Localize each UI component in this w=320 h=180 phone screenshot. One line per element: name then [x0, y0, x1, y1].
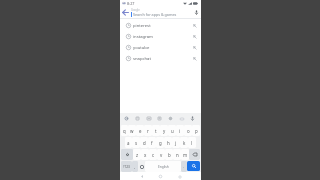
staticText: y [163, 128, 166, 134]
button[interactable]: Voice input [189, 115, 196, 122]
button[interactable]: u [168, 125, 176, 136]
button[interactable]: t [152, 125, 160, 136]
button[interactable]: b [165, 149, 173, 160]
staticText: f [151, 140, 153, 146]
staticText: h [167, 140, 170, 146]
button[interactable]: Theme [178, 115, 185, 122]
button[interactable]: i [176, 125, 184, 136]
button[interactable]: Shift [121, 149, 133, 160]
staticText: j [175, 140, 177, 146]
button[interactable]: k [180, 137, 188, 148]
staticText: r [147, 128, 149, 134]
button[interactable]: y [160, 125, 168, 136]
button[interactable]: r [144, 125, 152, 136]
staticText: youtube [133, 45, 150, 51]
staticText: ?123 [123, 165, 130, 169]
staticText: c [152, 152, 155, 158]
staticText: l [191, 140, 193, 146]
staticText: q [123, 128, 126, 134]
button[interactable]: h [164, 137, 172, 148]
button[interactable]: Voice search [191, 6, 201, 18]
button[interactable]: m [181, 149, 189, 160]
staticText: a [127, 140, 130, 146]
staticText: p [195, 128, 198, 134]
button[interactable]: Period [181, 161, 187, 172]
staticText: Google [131, 8, 140, 12]
button[interactable]: w [128, 125, 136, 136]
staticText: o [187, 128, 190, 134]
staticText: e [139, 128, 142, 134]
button[interactable]: Symbols [121, 161, 132, 172]
button[interactable]: a [125, 137, 132, 148]
button[interactable]: snapchat [120, 53, 201, 64]
button[interactable]: Backspace [189, 149, 200, 160]
button[interactable]: v [157, 149, 165, 160]
staticText: k [183, 140, 186, 146]
button[interactable]: Google search [123, 115, 130, 122]
button[interactable]: x [141, 149, 149, 160]
button[interactable]: f [148, 137, 156, 148]
button[interactable]: q [121, 125, 128, 136]
button[interactable]: z [133, 149, 141, 160]
button[interactable]: Emoji [138, 161, 145, 172]
button[interactable]: Back [138, 173, 145, 180]
button[interactable]: pinterest [120, 20, 201, 31]
staticText: b [168, 152, 171, 158]
button[interactable]: Home [157, 173, 164, 180]
staticText: u [171, 128, 174, 134]
button[interactable]: e [136, 125, 144, 136]
staticText: t [155, 128, 157, 134]
staticText: z [136, 152, 139, 158]
staticText: , [134, 164, 136, 169]
staticText: m [183, 152, 188, 158]
button[interactable]: j [172, 137, 180, 148]
staticText: pinterest [133, 23, 151, 29]
button[interactable]: Space [145, 161, 181, 172]
button[interactable]: l [188, 137, 196, 148]
button[interactable]: g [156, 137, 164, 148]
button[interactable]: Clipboard [156, 115, 163, 122]
button[interactable]: Back [120, 6, 131, 18]
button[interactable]: Comma [132, 161, 138, 172]
button[interactable]: Settings [167, 115, 174, 122]
button[interactable]: n [173, 149, 181, 160]
staticText: 8:27 [127, 1, 135, 6]
button[interactable]: instagram [120, 31, 201, 42]
button[interactable]: Search [187, 161, 200, 171]
button[interactable]: youtube [120, 42, 201, 53]
button[interactable]: GIF [145, 115, 152, 122]
staticText: English [158, 165, 169, 169]
staticText: g [159, 140, 162, 146]
staticText: v [160, 152, 163, 158]
button[interactable]: d [140, 137, 148, 148]
staticText: instagram [133, 34, 154, 40]
staticText: . [183, 164, 185, 169]
button[interactable]: p [192, 125, 200, 136]
staticText: Search for apps & games [133, 12, 177, 17]
button[interactable]: o [184, 125, 192, 136]
staticText: snapchat [133, 56, 151, 62]
staticText: d [143, 140, 146, 146]
staticText: n [176, 152, 179, 158]
button[interactable]: Recent apps [176, 173, 183, 180]
staticText: i [179, 128, 181, 134]
button[interactable]: c [149, 149, 157, 160]
staticText: x [144, 152, 147, 158]
button[interactable]: s [132, 137, 140, 148]
staticText: s [135, 140, 138, 146]
staticText: w [130, 128, 134, 134]
button[interactable]: Stickers [134, 115, 141, 122]
